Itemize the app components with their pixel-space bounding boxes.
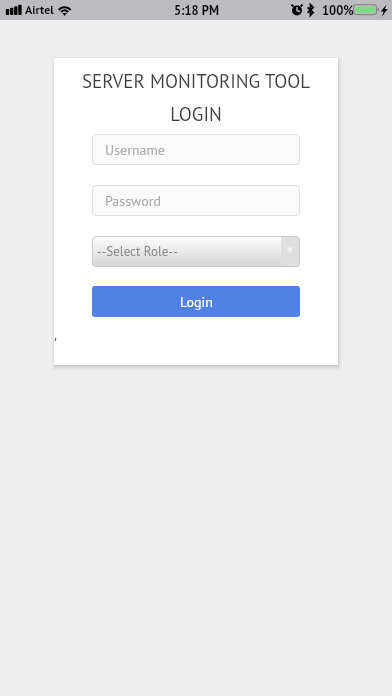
other: Charging	[380, 3, 388, 17]
staticText: --Select Role--	[97, 243, 178, 260]
staticText: ’	[54, 334, 57, 353]
staticText: 5:18 PM	[174, 2, 219, 18]
button[interactable]: Select Role	[92, 236, 300, 267]
other: Cellular signal strength	[5, 3, 23, 17]
staticText: Username	[105, 141, 165, 159]
button[interactable]: Open role dropdown	[281, 236, 300, 267]
button[interactable]: Username	[92, 134, 300, 165]
staticText: SERVER MONITORING TOOL LOGIN	[54, 69, 338, 126]
button[interactable]: Password	[92, 185, 300, 216]
staticText: Password	[105, 192, 161, 210]
other: Bluetooth on	[307, 3, 316, 17]
button[interactable]: Login	[92, 286, 300, 317]
staticText: Airtel	[25, 2, 54, 18]
other: Battery full	[353, 4, 380, 16]
staticText: Login	[180, 293, 213, 311]
staticText: 100%	[322, 2, 354, 18]
other: Alarm set	[291, 3, 304, 17]
other: Wi-Fi connected	[56, 3, 73, 17]
